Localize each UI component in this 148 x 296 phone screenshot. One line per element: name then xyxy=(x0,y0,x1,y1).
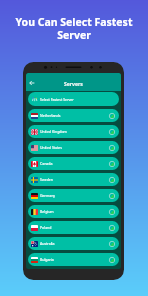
button[interactable]: Select Fastest Server xyxy=(28,92,119,106)
button[interactable]: Bulgaria xyxy=(28,253,119,266)
staticText: Sweden xyxy=(40,177,53,182)
button[interactable]: Australia xyxy=(28,237,119,250)
staticText: Canada xyxy=(40,161,53,166)
button[interactable]: Netherlands xyxy=(28,109,119,122)
staticText: Poland xyxy=(40,225,52,230)
staticText: United States xyxy=(40,145,62,150)
button[interactable]: United Kingdom xyxy=(28,125,119,138)
button[interactable]: United States xyxy=(28,141,119,154)
button[interactable]: Poland xyxy=(28,221,119,234)
staticText: Bulgaria xyxy=(40,257,54,262)
button[interactable]: Canada xyxy=(28,157,119,170)
staticText: Germany xyxy=(40,193,56,198)
button[interactable]: Belgium xyxy=(28,205,119,218)
staticText: United Kingdom xyxy=(40,129,67,134)
staticText: Australia xyxy=(40,241,55,246)
staticText: Netherlands xyxy=(40,113,61,118)
button[interactable]: Germany xyxy=(28,189,119,202)
staticText: Belgium xyxy=(40,209,54,214)
button[interactable]: Back xyxy=(26,75,38,91)
staticText: Servers xyxy=(64,81,83,88)
button[interactable]: Sweden xyxy=(28,173,119,186)
staticText: You Can Select Fastest Server xyxy=(14,15,134,42)
staticText: Select Fastest Server xyxy=(40,97,74,102)
